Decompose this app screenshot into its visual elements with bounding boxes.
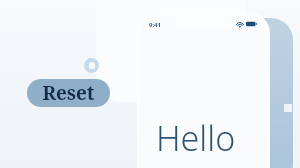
button[interactable]: Reset — [27, 79, 110, 107]
staticText: Hello — [156, 115, 236, 161]
staticText: Reset — [42, 80, 95, 106]
button[interactable]: Cursor — [84, 58, 99, 73]
staticText: 9:41 — [149, 21, 161, 29]
